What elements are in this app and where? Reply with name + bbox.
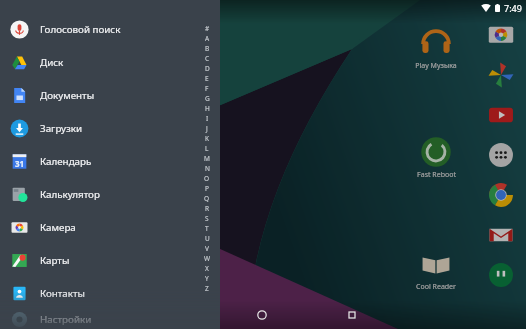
staticText: T (205, 224, 209, 233)
staticText: N (205, 164, 210, 173)
staticText: # (205, 24, 210, 33)
button[interactable]: 31 (0, 145, 220, 178)
staticText: 31 (15, 158, 25, 169)
button[interactable]: Alphabet index (197, 0, 217, 322)
staticText: Z (205, 284, 209, 293)
button[interactable]: YouTube (487, 101, 514, 128)
staticText: H (205, 104, 210, 113)
staticText: L (205, 144, 209, 153)
button[interactable]: Photos (487, 61, 514, 88)
staticText: E (205, 74, 209, 83)
staticText: Play Музыка (415, 61, 457, 71)
button[interactable]: Cool Reader (401, 248, 471, 292)
button[interactable]: Home (238, 300, 286, 329)
button[interactable]: Загрузки (0, 112, 220, 145)
button[interactable]: Hangouts (487, 261, 514, 288)
button[interactable]: Голосовой поиск (0, 13, 220, 46)
staticText: Настройки (40, 313, 92, 326)
staticText: Карты (40, 254, 70, 267)
button[interactable]: Настройки (0, 310, 220, 329)
staticText: J (206, 124, 208, 133)
staticText: A (205, 34, 210, 43)
staticText: Cool Reader (416, 282, 456, 292)
staticText: D (205, 64, 210, 73)
button[interactable]: Fast Reboot (401, 136, 471, 180)
staticText: Калькулятор (40, 188, 100, 201)
button[interactable]: Chrome (487, 181, 514, 208)
staticText: Документы (40, 89, 95, 102)
staticText: F (205, 84, 209, 93)
button[interactable]: Диск (0, 46, 220, 79)
staticText: P (205, 184, 209, 193)
staticText: Голосовой поиск (40, 23, 121, 36)
staticText: C (205, 54, 210, 63)
staticText: Y (205, 274, 209, 283)
staticText: I (206, 114, 209, 123)
staticText: Контакты (40, 287, 85, 300)
staticText: R (205, 204, 210, 213)
staticText: Загрузки (40, 122, 83, 135)
button[interactable]: Camera (487, 21, 514, 48)
staticText: X (205, 264, 209, 273)
staticText: S (205, 214, 209, 223)
staticText: W (204, 254, 211, 263)
button[interactable]: Контакты (0, 277, 220, 310)
button[interactable]: Камера (0, 211, 220, 244)
staticText: Камера (40, 221, 76, 234)
button[interactable]: Документы (0, 79, 220, 112)
staticText: Диск (40, 56, 64, 69)
button[interactable]: Карты (0, 244, 220, 277)
staticText: Календарь (40, 155, 92, 168)
button[interactable]: Калькулятор (0, 178, 220, 211)
button[interactable]: Gmail (487, 221, 514, 248)
staticText: Fast Reboot (417, 170, 456, 180)
button[interactable]: Apps (487, 141, 514, 168)
staticText: G (205, 94, 210, 103)
staticText: Q (204, 194, 210, 203)
staticText: K (205, 134, 210, 143)
button[interactable]: Recents (328, 300, 376, 329)
staticText: 7:49 (504, 2, 522, 14)
staticText: U (205, 234, 210, 243)
staticText: O (204, 174, 210, 183)
button[interactable]: Play Музыка (401, 25, 471, 71)
staticText: B (205, 44, 210, 53)
staticText: M (204, 154, 210, 163)
staticText: V (205, 244, 209, 253)
